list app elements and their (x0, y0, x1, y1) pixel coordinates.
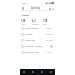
button[interactable]: Search (48, 7, 51, 10)
button[interactable]: 4.2 (32, 17, 43, 25)
button[interactable]: 128 (21, 17, 32, 25)
staticText: Yoga Flow (25, 39, 36, 42)
button[interactable]: Evening Walk (20, 49, 55, 55)
staticText: distance (32, 23, 40, 25)
button[interactable]: 318 (43, 17, 54, 25)
staticText: Evening Walk (25, 51, 39, 54)
staticText: kcal (43, 23, 47, 25)
button[interactable]: Tab 2 (28, 69, 37, 75)
staticText: Morning Run (25, 27, 39, 30)
button[interactable]: Tab 3 (37, 69, 46, 75)
staticText: 9:41 (22, 1, 27, 4)
button[interactable]: Cycling (20, 31, 55, 37)
button[interactable]: Tab 1 (20, 69, 28, 75)
staticText: 30 min (46, 39, 53, 42)
button[interactable]: Menu (21, 6, 25, 10)
button[interactable]: More options (51, 7, 54, 10)
staticText: steps (21, 23, 26, 25)
staticText: 2.1 km (46, 51, 53, 54)
staticText: 5.2 km (46, 27, 53, 30)
staticText: Cycling (25, 33, 33, 36)
staticText: 128 (21, 19, 26, 22)
button[interactable]: Strength Training (20, 43, 55, 49)
button[interactable]: Yoga Flow (20, 37, 55, 43)
staticText: 18 min (46, 33, 53, 36)
staticText: Activity (31, 6, 41, 10)
staticText: Strength Training (25, 45, 43, 48)
staticText: Today (22, 13, 30, 16)
button[interactable]: Morning Run (20, 25, 55, 31)
staticText: 4.2 (32, 19, 36, 22)
staticText: 318 (43, 19, 48, 22)
button[interactable]: Tab 4 (46, 69, 55, 75)
